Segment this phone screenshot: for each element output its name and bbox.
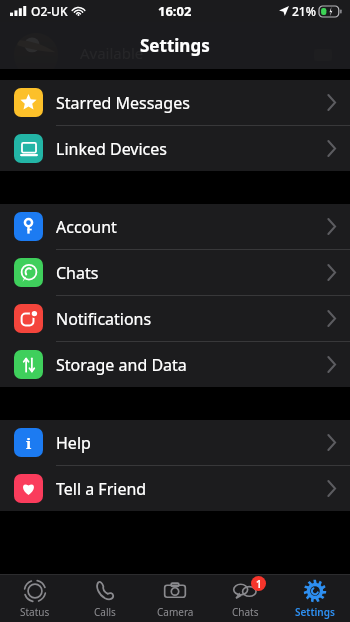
staticText: 21% [292,3,316,19]
staticText: Settings [295,605,335,619]
staticText: O2-UK [31,3,68,19]
staticText: Calls [94,605,116,619]
button[interactable]: Storage and Data [0,342,350,387]
button[interactable]: Chats [210,575,280,622]
button[interactable]: Account [0,204,350,249]
staticText: Chats [56,262,99,284]
button[interactable]: Tell a Friend [0,466,350,511]
staticText: 16:02 [158,2,192,20]
staticText: Status [20,605,50,619]
staticText: Chats [232,605,259,619]
button[interactable]: Camera [140,575,210,622]
staticText: Notifications [56,308,152,330]
staticText: Camera [157,605,194,619]
staticText: i [26,433,32,453]
staticText: Account [56,216,117,238]
button[interactable]: Settings [280,575,350,622]
button[interactable]: Status [0,575,70,622]
staticText: Help [56,432,91,454]
button[interactable]: i [0,420,350,465]
button[interactable]: Calls [70,575,140,622]
button[interactable]: Starred Messages [0,80,350,125]
button[interactable]: Linked Devices [0,126,350,171]
staticText: Linked Devices [56,138,167,160]
staticText: Settings [140,34,210,57]
staticText: 1 [256,577,262,591]
button[interactable]: Notifications [0,296,350,341]
staticText: Available [80,43,144,63]
staticText: Starred Messages [56,92,190,114]
staticText: Tell a Friend [56,478,147,500]
staticText: Storage and Data [56,354,187,376]
button[interactable]: Chats [0,250,350,295]
button[interactable]: Available [0,22,350,69]
